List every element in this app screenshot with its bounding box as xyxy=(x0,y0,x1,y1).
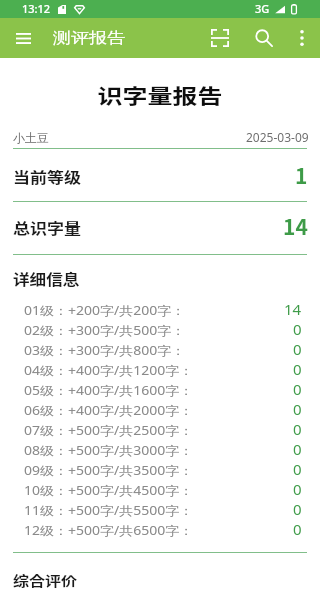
staticText: 综合评价 xyxy=(13,570,78,589)
staticText: 10级：+500字/共4500字： xyxy=(24,482,194,499)
staticText: 1 xyxy=(295,160,308,190)
staticText: 0 xyxy=(293,319,302,339)
staticText: 0 xyxy=(293,519,302,539)
staticText: 02级：+300字/共500字： xyxy=(24,322,186,339)
staticText: 总识字量 xyxy=(13,217,81,238)
staticText: 04级：+400字/共1200字： xyxy=(24,362,194,379)
button[interactable]: Scan xyxy=(200,18,240,58)
staticText: 测评报告 xyxy=(53,29,125,48)
staticText: 小土豆 xyxy=(13,130,49,145)
staticText: 详细信息 xyxy=(13,268,80,289)
staticText: 11级：+500字/共5500字： xyxy=(24,502,194,519)
staticText: 08级：+500字/共3000字： xyxy=(24,442,194,459)
button[interactable]: Search xyxy=(244,18,284,58)
staticText: 0 xyxy=(293,379,302,399)
staticText: 14 xyxy=(283,211,308,241)
staticText: 0 xyxy=(293,459,302,479)
staticText: 14 xyxy=(284,299,302,319)
staticText: 09级：+500字/共3500字： xyxy=(24,462,194,479)
staticText: 0 xyxy=(293,359,302,379)
staticText: 07级：+500字/共2500字： xyxy=(24,422,194,439)
staticText: 2025-03-09 xyxy=(246,129,309,145)
staticText: 0 xyxy=(293,479,302,499)
staticText: 0 xyxy=(293,439,302,459)
staticText: 13:12 xyxy=(22,1,51,16)
staticText: 当前等级 xyxy=(13,166,81,187)
button[interactable]: Menu xyxy=(0,18,46,58)
staticText: 06级：+400字/共2000字： xyxy=(24,402,194,419)
staticText: 识字量报告 xyxy=(97,80,223,110)
button[interactable]: More options xyxy=(284,18,320,58)
staticText: 0 xyxy=(293,399,302,419)
staticText: 03级：+300字/共800字： xyxy=(24,342,186,359)
staticText: 12级：+500字/共6500字： xyxy=(24,522,194,539)
staticText: 05级：+400字/共1600字： xyxy=(24,382,194,399)
staticText: 0 xyxy=(293,419,302,439)
staticText: 3G xyxy=(255,1,270,16)
staticText: 01级：+200字/共200字： xyxy=(24,302,186,319)
staticText: 0 xyxy=(293,499,302,519)
staticText: 0 xyxy=(293,339,302,359)
